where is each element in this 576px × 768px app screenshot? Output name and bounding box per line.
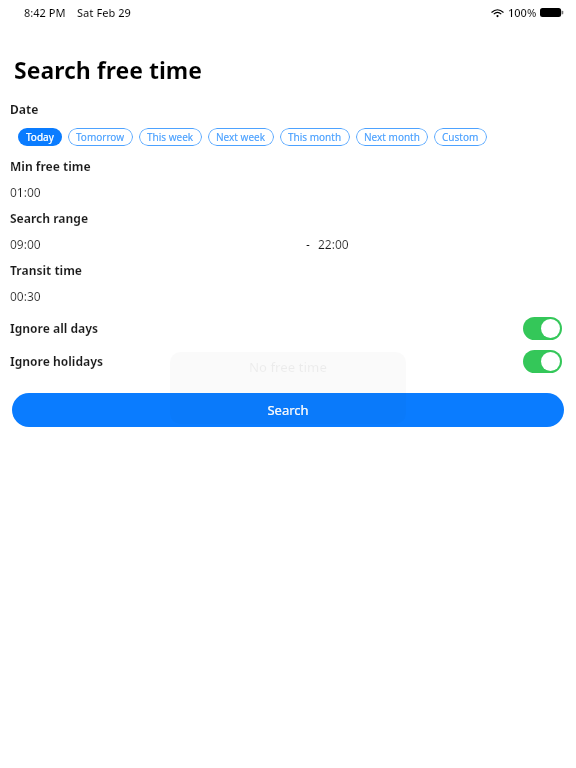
button[interactable]: Today: [18, 128, 62, 146]
staticText: Ignore holidays: [10, 353, 104, 369]
button[interactable]: 09:00: [10, 236, 41, 252]
staticText: Search range: [10, 210, 89, 226]
staticText: Transit time: [10, 262, 83, 278]
staticText: Next week: [216, 130, 266, 144]
staticText: This week: [147, 130, 194, 144]
staticText: Ignore all days: [10, 320, 99, 336]
staticText: Tomorrow: [76, 130, 125, 144]
staticText: Search: [267, 401, 309, 419]
button[interactable]: Ignore holidays: [0, 349, 576, 373]
button[interactable]: Search: [12, 393, 564, 427]
staticText: Today: [26, 130, 54, 144]
staticText: 8:42 PM: [24, 5, 66, 20]
button[interactable]: Next week: [208, 128, 274, 146]
button[interactable]: 01:00: [10, 184, 576, 200]
button[interactable]: Toggle: [523, 350, 562, 373]
button[interactable]: Next month: [356, 128, 428, 146]
staticText: 09:00: [10, 236, 41, 252]
staticText: -: [306, 236, 310, 252]
staticText: This month: [288, 130, 342, 144]
staticText: 100%: [508, 5, 537, 20]
staticText: Next month: [364, 130, 420, 144]
staticText: Custom: [442, 130, 479, 144]
button[interactable]: Tomorrow: [68, 128, 133, 146]
staticText: Date: [10, 101, 39, 117]
button[interactable]: Ignore all days: [0, 316, 576, 340]
staticText: No free time: [249, 358, 327, 376]
staticText: Min free time: [10, 158, 91, 174]
button[interactable]: 22:00: [318, 236, 349, 252]
button[interactable]: Custom: [434, 128, 487, 146]
staticText: OK: [278, 404, 298, 423]
button[interactable]: This month: [280, 128, 350, 146]
staticText: 01:00: [10, 184, 41, 200]
button[interactable]: This week: [139, 128, 202, 146]
staticText: Search free time: [14, 54, 202, 85]
button[interactable]: 00:30: [10, 288, 576, 304]
staticText: 22:00: [318, 236, 349, 252]
button[interactable]: Toggle: [523, 317, 562, 340]
staticText: 00:30: [10, 288, 41, 304]
staticText: Sat Feb 29: [77, 5, 131, 20]
